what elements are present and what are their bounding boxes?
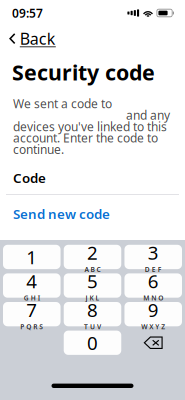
staticText: 2 <box>87 240 98 265</box>
button[interactable]: 7 <box>3 302 60 326</box>
staticText: 8 <box>87 297 98 322</box>
button[interactable]: 8 <box>64 302 121 326</box>
button[interactable]: Back <box>0 23 65 54</box>
staticText: account. Enter the code to <box>13 130 158 146</box>
staticText: 6 <box>148 269 159 293</box>
staticText: P Q R S <box>20 322 43 331</box>
staticText: G H I <box>24 293 40 302</box>
staticText: M N O <box>143 293 163 302</box>
staticText: We sent a code to <box>13 96 112 112</box>
button[interactable]: 2 <box>64 245 121 269</box>
staticText: Code <box>13 169 46 187</box>
staticText: J K L <box>85 293 99 302</box>
staticText: A B C <box>84 265 100 274</box>
staticText: 5 <box>87 269 98 293</box>
button[interactable]: Delete <box>124 331 182 355</box>
button[interactable]: Send new code <box>0 200 123 228</box>
staticText: 0 <box>87 330 98 355</box>
staticText: W X Y Z <box>141 322 165 331</box>
staticText: 9 <box>148 297 159 322</box>
button[interactable]: 3 <box>124 245 182 269</box>
staticText: and any <box>126 107 170 123</box>
button[interactable]: 6 <box>124 273 182 298</box>
staticText: D E F <box>145 265 162 274</box>
staticText: T U V <box>84 322 101 331</box>
button[interactable]: 0 <box>64 331 121 355</box>
staticText: 1 <box>26 245 37 269</box>
button[interactable]: 9 <box>124 302 182 326</box>
button[interactable]: 1 <box>3 245 60 269</box>
staticText: 09:57 <box>12 5 43 21</box>
staticText: devices you've linked to this <box>13 118 167 134</box>
staticText: 7 <box>26 297 37 322</box>
button[interactable]: 5 <box>64 273 121 298</box>
staticText: continue. <box>13 141 64 157</box>
staticText: Security code <box>12 58 155 86</box>
button[interactable]: 4 <box>3 273 60 298</box>
staticText: 3 <box>148 240 159 265</box>
staticText: Send new code <box>13 205 110 223</box>
staticText: 4 <box>26 269 37 293</box>
staticText: Back <box>20 28 56 49</box>
